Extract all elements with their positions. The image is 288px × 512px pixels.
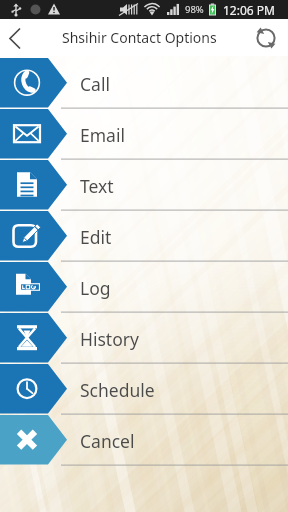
staticText: Call (80, 72, 110, 96)
staticText: Edit (80, 225, 112, 249)
button[interactable]: History (0, 313, 288, 364)
button[interactable]: Cancel (0, 415, 288, 466)
staticText: Cancel (80, 429, 135, 453)
button[interactable]: Back (0, 19, 30, 56)
button[interactable]: Edit (0, 211, 288, 262)
staticText: Schedule (80, 378, 155, 402)
button[interactable]: Call (0, 58, 288, 109)
staticText: History (80, 327, 139, 351)
staticText: Log (80, 276, 111, 300)
staticText: Shsihir Contact Options (62, 28, 217, 47)
staticText: 98% (185, 3, 204, 16)
button[interactable]: Log (0, 262, 288, 313)
staticText: Email (80, 123, 125, 147)
button[interactable]: Text (0, 160, 288, 211)
staticText: Text (80, 174, 114, 198)
button[interactable]: Schedule (0, 364, 288, 415)
staticText: 12:06 PM (223, 2, 275, 18)
button[interactable]: Refresh (244, 21, 288, 55)
button[interactable]: Email (0, 109, 288, 160)
